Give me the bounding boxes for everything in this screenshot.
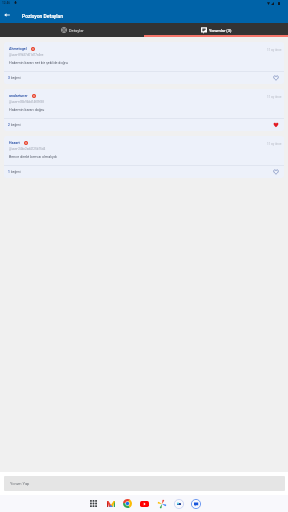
staticText: 11 ay önce <box>267 142 282 146</box>
staticText: beğeni <box>11 170 21 174</box>
staticText: Hakemin kararı net bir şekilde doğru <box>9 61 68 65</box>
staticText: 12:46 <box>2 1 11 5</box>
staticText: analartuner <box>9 94 28 98</box>
button[interactable]: Yorumlar (3) <box>144 23 288 37</box>
staticText: 11 ay önce <box>267 95 282 99</box>
button[interactable]: Messages <box>173 498 184 509</box>
button[interactable]: Hazart <box>4 136 284 178</box>
staticText: Hakemin kararı doğru <box>9 108 45 112</box>
staticText: 3 <box>8 76 10 80</box>
staticText: Detaylar <box>69 28 84 33</box>
button[interactable]: YouTube <box>139 498 150 509</box>
button[interactable]: Yorum Yap <box>4 476 285 491</box>
staticText: 11 ay önce <box>267 48 282 52</box>
button[interactable]: Like <box>272 168 280 176</box>
button[interactable]: Gmail <box>105 498 116 509</box>
staticText: Yorumlar (3) <box>209 28 232 33</box>
staticText: beğeni <box>11 123 21 127</box>
staticText: Ahmetogel <box>9 47 27 51</box>
button[interactable]: analartuner <box>4 89 284 131</box>
staticText: Bence direkt kırmızı olmalıydı <box>9 155 57 159</box>
button[interactable]: Back <box>2 10 12 20</box>
button[interactable]: Ahmetogel <box>4 42 284 84</box>
button[interactable]: Like <box>272 121 280 129</box>
staticText: @user-89b37d01d77e4ee <box>9 53 44 57</box>
button[interactable]: Detaylar <box>0 23 144 37</box>
staticText: Hazart <box>9 141 20 145</box>
staticText: 2 <box>8 123 10 127</box>
staticText: Pozisyon Detayları <box>22 13 64 19</box>
button[interactable]: Chrome <box>122 498 133 509</box>
button[interactable]: Chat <box>190 498 201 509</box>
staticText: 1 <box>8 170 10 174</box>
staticText: beğeni <box>11 76 21 80</box>
staticText: @user-24bc2ad4125b75d4 <box>9 147 46 151</box>
staticText: Yorum Yap <box>10 481 30 486</box>
button[interactable]: All apps <box>88 498 99 509</box>
button[interactable]: Like <box>272 74 280 82</box>
staticText: @user-e05b94dd14f09f38 <box>9 100 44 104</box>
button[interactable]: Photos <box>156 498 167 509</box>
